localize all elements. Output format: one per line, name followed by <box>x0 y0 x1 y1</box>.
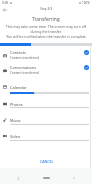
staticText: Video <box>10 134 21 139</box>
staticText: Step 3/3 <box>40 7 53 11</box>
button[interactable]: Back <box>0 5 9 14</box>
button[interactable]: Calendar <box>0 85 92 91</box>
staticText: Content transferred <box>10 56 39 60</box>
staticText: You will be notified when the transfer i… <box>6 34 86 39</box>
button[interactable]: Music <box>0 118 92 124</box>
button[interactable]: Back <box>12 168 24 184</box>
staticText: Calendar <box>10 85 27 90</box>
staticText: 100% <box>82 1 90 5</box>
staticText: Transferring <box>32 16 60 23</box>
staticText: This may take some time. The screen may … <box>3 24 89 34</box>
button[interactable]: CANCEL <box>37 157 57 166</box>
staticText: Content transferred <box>10 71 39 75</box>
staticText: Contacts <box>10 50 26 55</box>
button[interactable]: Conversations <box>0 63 92 78</box>
staticText: Conversations <box>10 65 37 70</box>
button[interactable]: Home <box>39 168 53 184</box>
button[interactable]: Contacts <box>0 48 92 63</box>
button[interactable]: Recents <box>68 168 80 184</box>
staticText: 9:45 <box>2 1 9 5</box>
button[interactable]: Photos <box>0 102 92 108</box>
button[interactable]: Video <box>0 134 92 140</box>
staticText: Photos <box>10 102 23 107</box>
staticText: CANCEL <box>40 159 54 164</box>
staticText: Music <box>10 118 21 123</box>
